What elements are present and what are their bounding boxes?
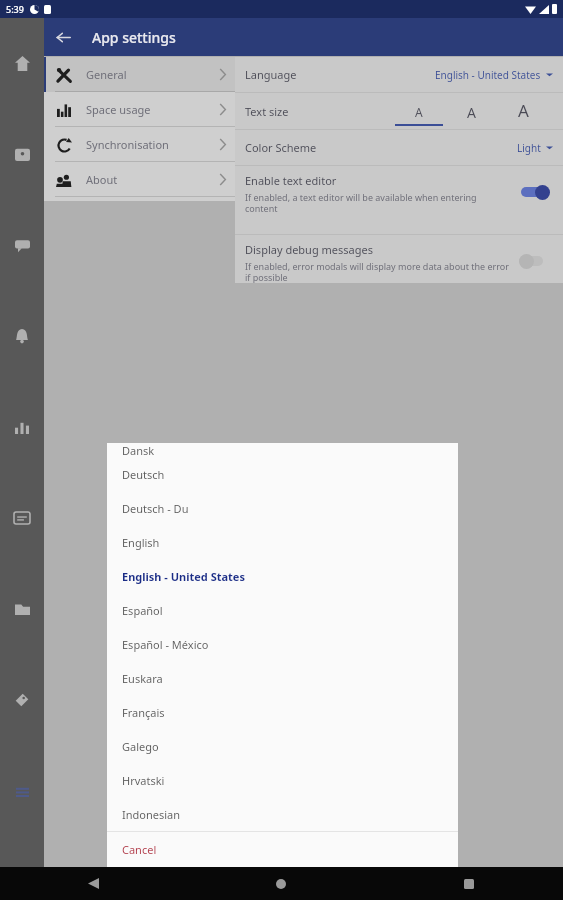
staticText: Hrvatski — [122, 773, 165, 788]
button[interactable]: Español — [107, 593, 458, 627]
staticText: English - United States — [122, 569, 245, 584]
button[interactable]: Deutsch - Du — [107, 491, 458, 525]
staticText: Text size — [245, 104, 289, 119]
button[interactable]: A — [497, 93, 549, 129]
staticText: Deutsch - Du — [122, 501, 189, 516]
button[interactable]: Indonesian — [107, 797, 458, 831]
button[interactable]: About — [44, 162, 235, 197]
staticText: App settings — [92, 28, 176, 47]
button[interactable]: A — [445, 93, 497, 129]
staticText: Language — [245, 67, 297, 82]
button[interactable]: Messages — [0, 230, 44, 260]
button[interactable]: Euskara — [107, 661, 458, 695]
button[interactable]: Language — [235, 57, 563, 92]
staticText: Français — [122, 705, 165, 720]
button[interactable]: Cancel — [107, 832, 458, 866]
button[interactable]: Home — [0, 48, 44, 78]
button[interactable]: Color Scheme — [235, 130, 563, 165]
button[interactable]: Back — [44, 18, 82, 56]
button[interactable]: Statistics — [0, 412, 44, 442]
staticText: Display debug messages — [245, 242, 373, 257]
staticText: Galego — [122, 739, 159, 754]
staticText: 5:39 — [6, 3, 24, 15]
button[interactable]: Galego — [107, 729, 458, 763]
staticText: Light — [517, 141, 541, 155]
button[interactable]: Hrvatski — [107, 763, 458, 797]
staticText: A — [415, 104, 423, 120]
button[interactable]: Home — [187, 867, 375, 900]
button[interactable]: Notifications — [0, 321, 44, 351]
button[interactable]: More — [0, 776, 44, 806]
staticText: Deutsch — [122, 467, 165, 482]
button[interactable]: Calendar — [0, 139, 44, 169]
staticText: Euskara — [122, 671, 163, 686]
button[interactable]: Français — [107, 695, 458, 729]
staticText: General — [86, 67, 127, 82]
staticText: A — [518, 99, 529, 122]
button[interactable]: Display debug messages — [235, 235, 563, 283]
staticText: Indonesian — [122, 807, 181, 822]
button[interactable]: Synchronisation — [44, 127, 235, 162]
staticText: Synchronisation — [86, 137, 169, 152]
button[interactable]: Español - México — [107, 627, 458, 661]
staticText: Español - México — [122, 637, 209, 652]
button[interactable]: Back — [0, 867, 187, 900]
staticText: English - United States — [435, 68, 541, 82]
button[interactable]: Tags — [0, 685, 44, 715]
button[interactable]: English — [107, 525, 458, 559]
button[interactable]: Contacts — [0, 503, 44, 533]
staticText: Español — [122, 603, 163, 618]
staticText: English — [122, 535, 160, 550]
staticText: A — [467, 103, 476, 122]
staticText: Enable text editor — [245, 173, 337, 188]
button[interactable]: Space usage — [44, 92, 235, 127]
button[interactable]: English - United States — [107, 559, 458, 593]
staticText: If enabled, a text editor will be availa… — [245, 191, 511, 215]
button[interactable]: General — [44, 57, 235, 92]
button[interactable]: Files — [0, 594, 44, 624]
button[interactable]: Deutsch — [107, 457, 458, 491]
staticText: About — [86, 172, 118, 187]
button[interactable]: Enable text editor — [235, 166, 563, 234]
staticText: If enabled, error modals will display mo… — [245, 260, 511, 283]
button[interactable]: Recent apps — [375, 867, 563, 900]
button[interactable]: A — [393, 93, 445, 129]
staticText: Color Scheme — [245, 140, 317, 155]
staticText: Cancel — [122, 842, 157, 857]
staticText: Space usage — [86, 102, 151, 117]
staticText: Dansk — [122, 443, 155, 457]
